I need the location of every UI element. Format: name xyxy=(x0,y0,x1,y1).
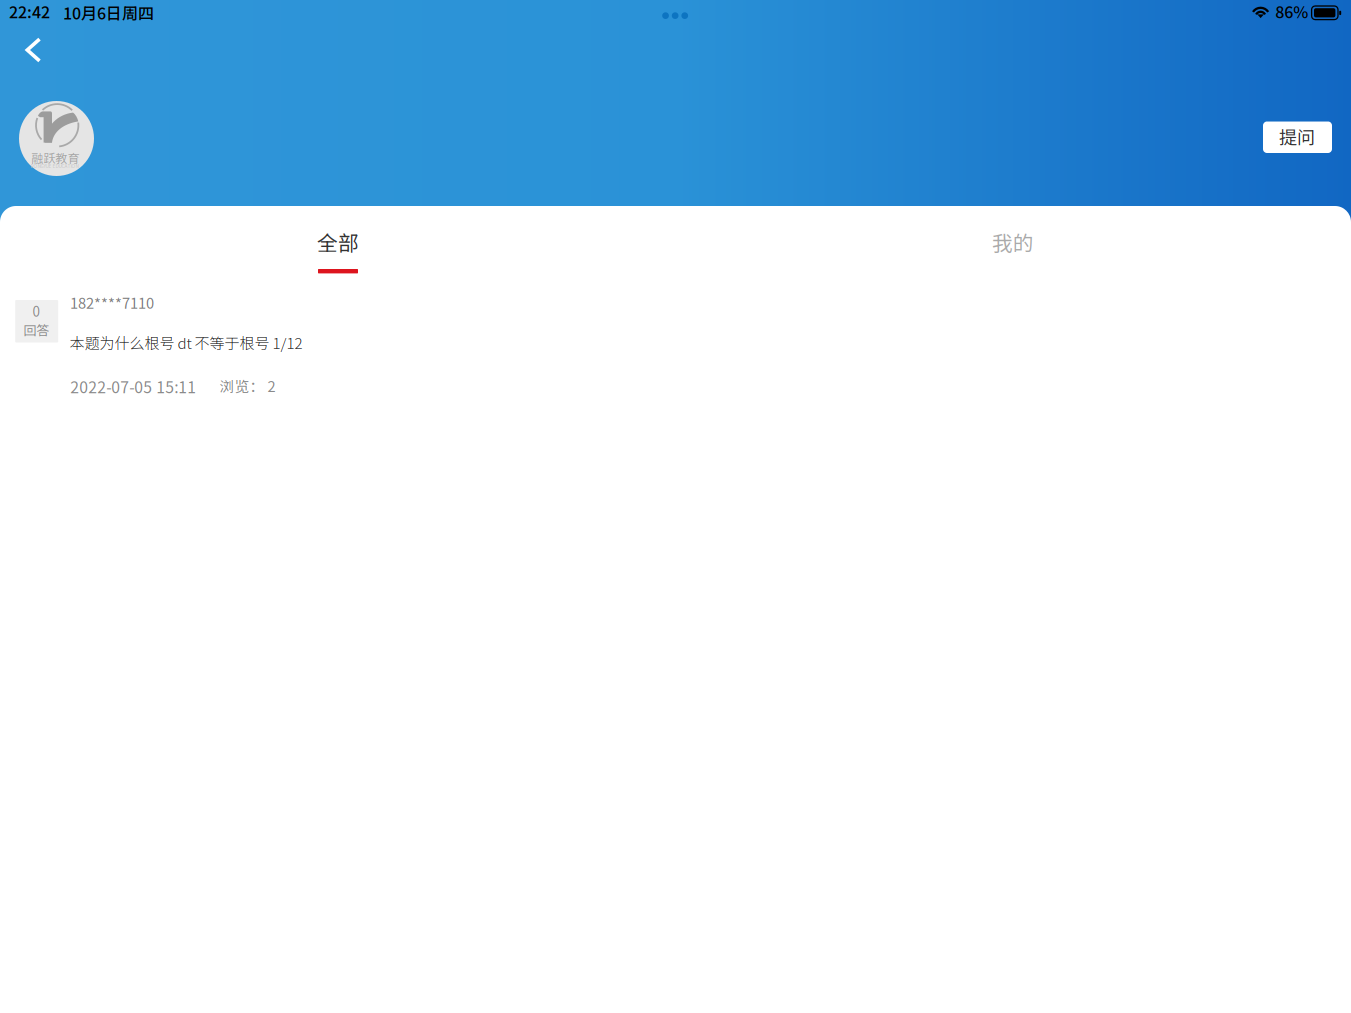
button[interactable]: 0 xyxy=(0,290,1351,406)
staticText: 本题为什么根号 dt 不等于根号 1/12 xyxy=(69,331,302,353)
button[interactable]: 全部 xyxy=(0,222,675,282)
staticText: 2022-07-05 15:11 xyxy=(70,375,196,398)
staticText: 全部 xyxy=(317,227,359,257)
staticText: 我的 xyxy=(992,227,1034,257)
staticText: 86% xyxy=(1275,0,1308,23)
button[interactable]: 我的 xyxy=(675,222,1351,282)
button[interactable]: 提问 xyxy=(1263,121,1332,153)
staticText: 182****7110 xyxy=(70,292,154,313)
button[interactable]: Back xyxy=(10,33,62,73)
staticText: 融跃教育 xyxy=(31,149,79,166)
staticText: 0 xyxy=(33,301,40,321)
staticText: 浏览： 2 xyxy=(219,375,275,396)
staticText: 提问 xyxy=(1279,123,1315,149)
staticText: 回答 xyxy=(23,320,49,339)
staticText: 10月6日周四 xyxy=(63,1,154,24)
staticText: 22:42 xyxy=(9,0,50,23)
staticText: RONGYUE EDUCATION xyxy=(30,162,78,169)
